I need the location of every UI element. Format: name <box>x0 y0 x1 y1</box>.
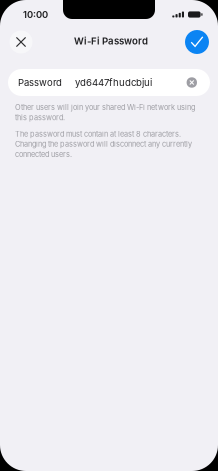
staticText: Wi-Fi Password <box>74 35 148 47</box>
staticText: Password <box>18 77 62 88</box>
staticText: Other users will join your shared Wi-Fi … <box>15 103 195 122</box>
staticText: yd6447fhudcbjui <box>75 77 152 88</box>
staticText: 10:00 <box>23 9 48 20</box>
button[interactable]: Save <box>185 30 209 54</box>
button[interactable]: Clear text <box>184 74 200 90</box>
staticText: The password must contain at least 8 cha… <box>15 129 192 159</box>
button[interactable]: Close <box>9 30 32 53</box>
